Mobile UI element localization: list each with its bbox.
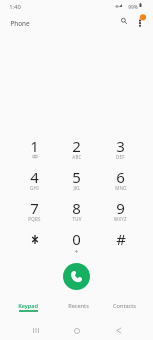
staticText: 1:40: [9, 3, 21, 11]
button[interactable]: Recent apps: [26, 321, 45, 340]
staticText: 5: [72, 167, 81, 187]
button[interactable]: 1: [13, 132, 56, 163]
staticText: WXYZ: [114, 216, 127, 222]
staticText: 9: [116, 198, 125, 218]
staticText: Contacts: [113, 302, 136, 310]
staticText: Keypad: [18, 302, 38, 310]
staticText: Recents: [68, 302, 89, 310]
staticText: 7: [30, 198, 39, 218]
staticText: 6: [116, 167, 125, 187]
button[interactable]: More options: [132, 12, 150, 30]
button[interactable]: 0: [55, 225, 98, 256]
button[interactable]: Search: [115, 12, 133, 30]
button[interactable]: [13, 225, 56, 256]
staticText: 99%: [128, 4, 138, 11]
staticText: TUV: [72, 216, 82, 222]
staticText: Phone: [10, 19, 30, 28]
button[interactable]: 2: [55, 132, 98, 163]
button[interactable]: Contacts: [102, 298, 146, 314]
button[interactable]: 9: [99, 194, 142, 225]
staticText: JKL: [73, 185, 81, 191]
button[interactable]: Home: [67, 321, 86, 340]
staticText: MNO: [115, 185, 127, 191]
staticText: 3: [116, 136, 125, 156]
button[interactable]: #: [99, 225, 142, 256]
button[interactable]: Call: [63, 263, 90, 290]
staticText: ABC: [72, 154, 82, 160]
staticText: DEF: [116, 154, 125, 160]
button[interactable]: 4: [13, 163, 56, 194]
button[interactable]: 5: [55, 163, 98, 194]
button[interactable]: Back: [109, 321, 128, 340]
staticText: GHI: [30, 185, 39, 191]
staticText: 1: [30, 136, 39, 156]
staticText: PQRS: [28, 216, 41, 222]
staticText: 0: [72, 229, 81, 249]
staticText: 8: [72, 198, 81, 218]
button[interactable]: 7: [13, 194, 56, 225]
staticText: #: [116, 229, 126, 249]
button[interactable]: Keypad: [6, 298, 50, 314]
button[interactable]: 6: [99, 163, 142, 194]
staticText: 2: [72, 136, 81, 156]
button[interactable]: 3: [99, 132, 142, 163]
button[interactable]: Recents: [56, 298, 100, 314]
button[interactable]: 8: [55, 194, 98, 225]
staticText: 4: [30, 167, 39, 187]
